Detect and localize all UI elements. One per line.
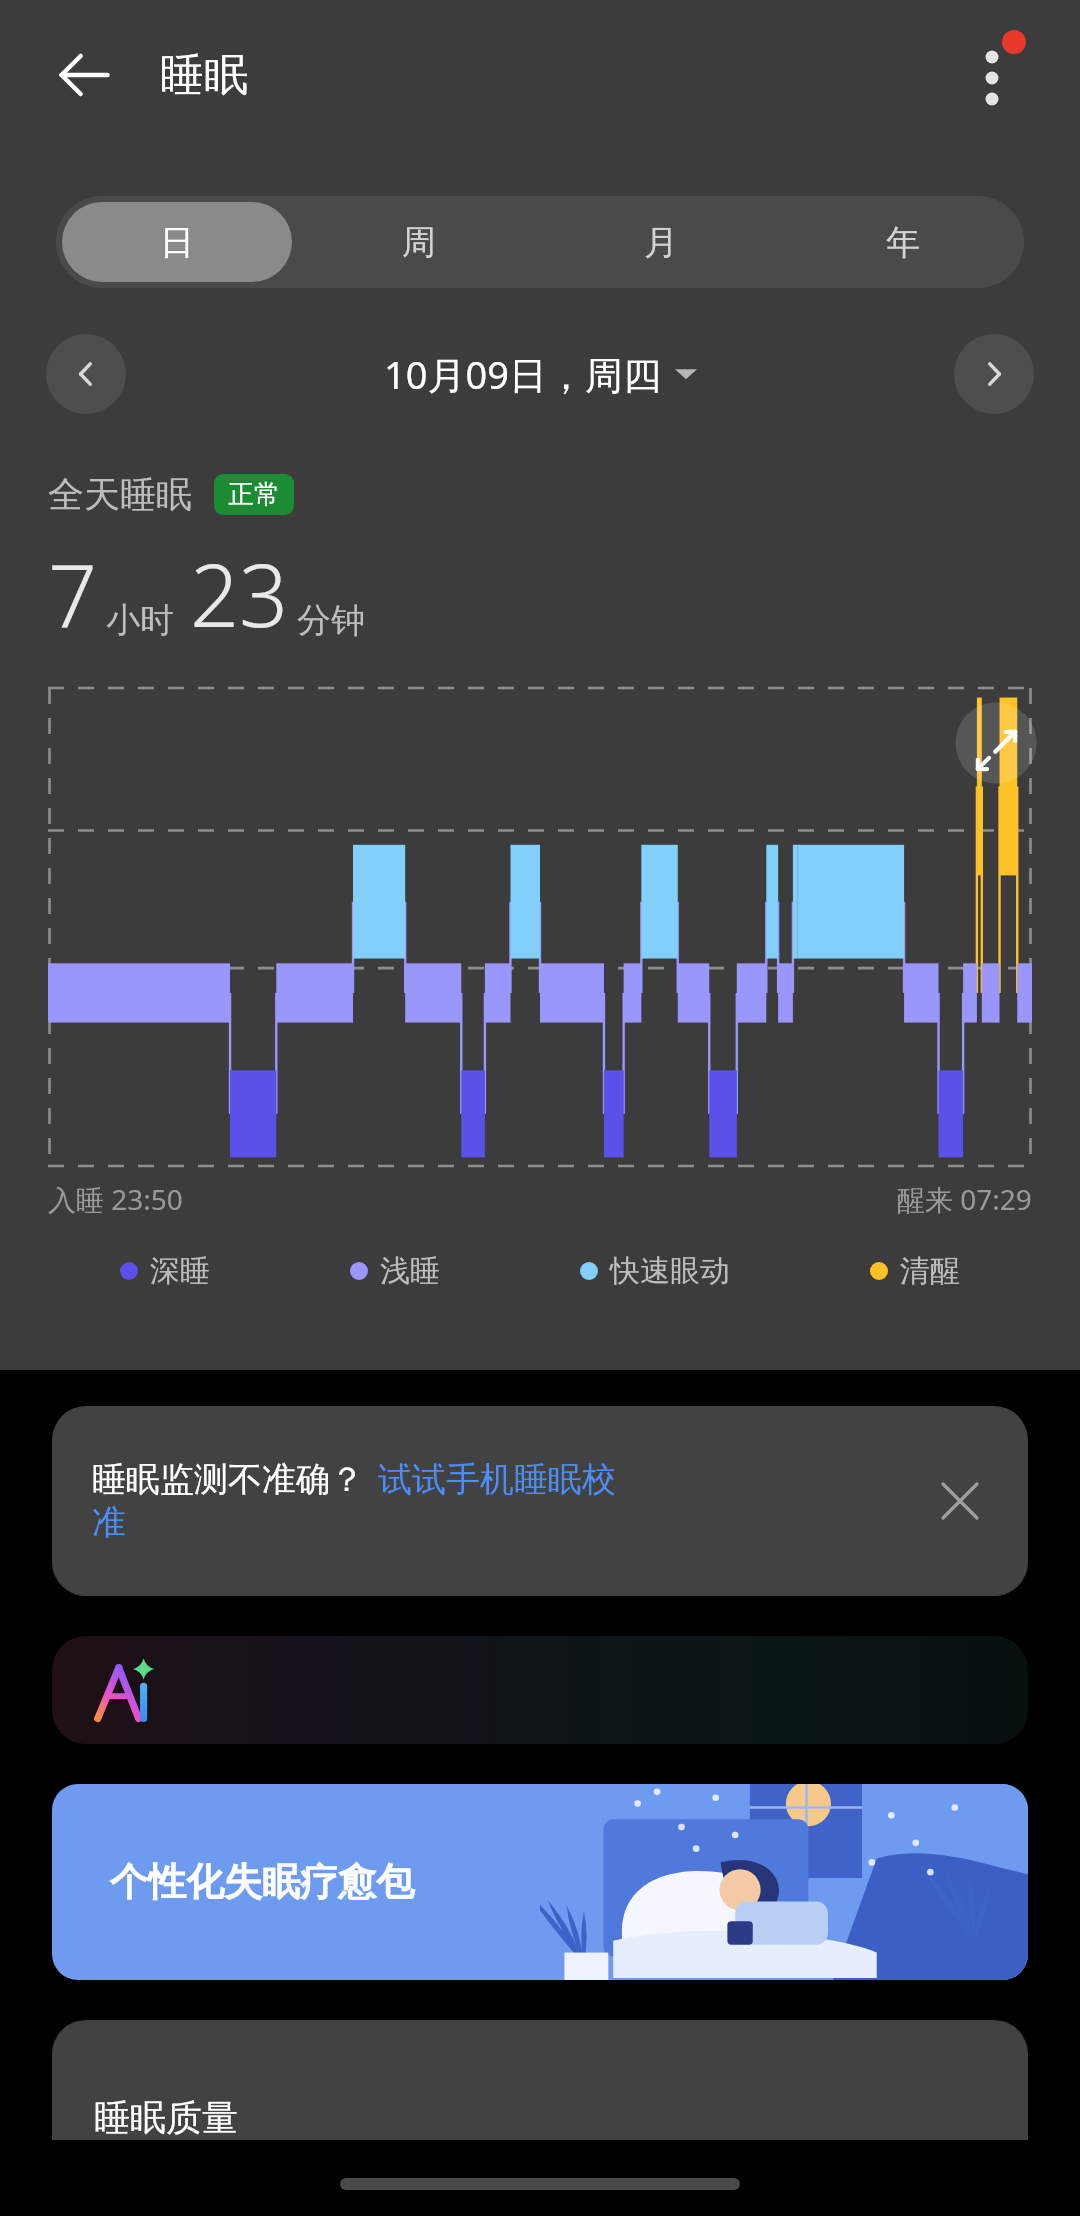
button[interactable]: Next day — [954, 334, 1034, 414]
staticText: 入睡 23:50 — [48, 1180, 183, 1218]
staticText: 准 — [92, 1501, 126, 1544]
button[interactable]: 月 — [546, 202, 776, 282]
button[interactable]: AI assistant — [52, 1636, 1028, 1744]
staticText: 7 — [48, 535, 98, 652]
button[interactable]: 10月09日，周四 — [384, 348, 697, 400]
button[interactable]: 睡眠监测不准确？ — [52, 1406, 1028, 1596]
button[interactable]: 睡眠质量 — [52, 2020, 1028, 2140]
button[interactable]: 日 — [62, 202, 292, 282]
staticText: 10月09日，周四 — [384, 348, 661, 400]
staticText: 分钟 — [297, 599, 365, 642]
staticText: 清醒 — [900, 1252, 960, 1290]
staticText: 全天睡眠 — [48, 472, 192, 517]
button[interactable]: 年 — [788, 202, 1018, 282]
staticText: 个性化失眠疗愈包 — [110, 1858, 414, 1906]
staticText: 小时 — [106, 599, 174, 642]
button[interactable]: More options — [944, 27, 1040, 123]
staticText: 试试手机睡眠校 — [378, 1458, 616, 1501]
button[interactable]: 个性化失眠疗愈包 — [52, 1784, 1028, 1980]
button[interactable]: Back — [30, 21, 138, 129]
staticText: 23 — [190, 535, 289, 652]
staticText: 快速眼动 — [610, 1252, 730, 1290]
staticText: 深睡 — [150, 1252, 210, 1290]
button[interactable]: 周 — [304, 202, 534, 282]
button[interactable]: Previous day — [46, 334, 126, 414]
staticText: 日 — [160, 221, 194, 264]
staticText: 醒来 07:29 — [897, 1180, 1032, 1218]
button[interactable]: Dismiss — [920, 1461, 1000, 1541]
staticText: 睡眠质量 — [94, 2095, 238, 2140]
staticText: 月 — [644, 221, 678, 264]
staticText: 年 — [886, 221, 920, 264]
staticText: 睡眠监测不准确？ — [92, 1458, 364, 1501]
staticText: 正常 — [228, 478, 280, 511]
staticText: 浅睡 — [380, 1252, 440, 1290]
staticText: 睡眠 — [160, 48, 248, 103]
staticText: 周 — [402, 221, 436, 264]
button[interactable]: Sleep stages chart — [48, 688, 1032, 1166]
